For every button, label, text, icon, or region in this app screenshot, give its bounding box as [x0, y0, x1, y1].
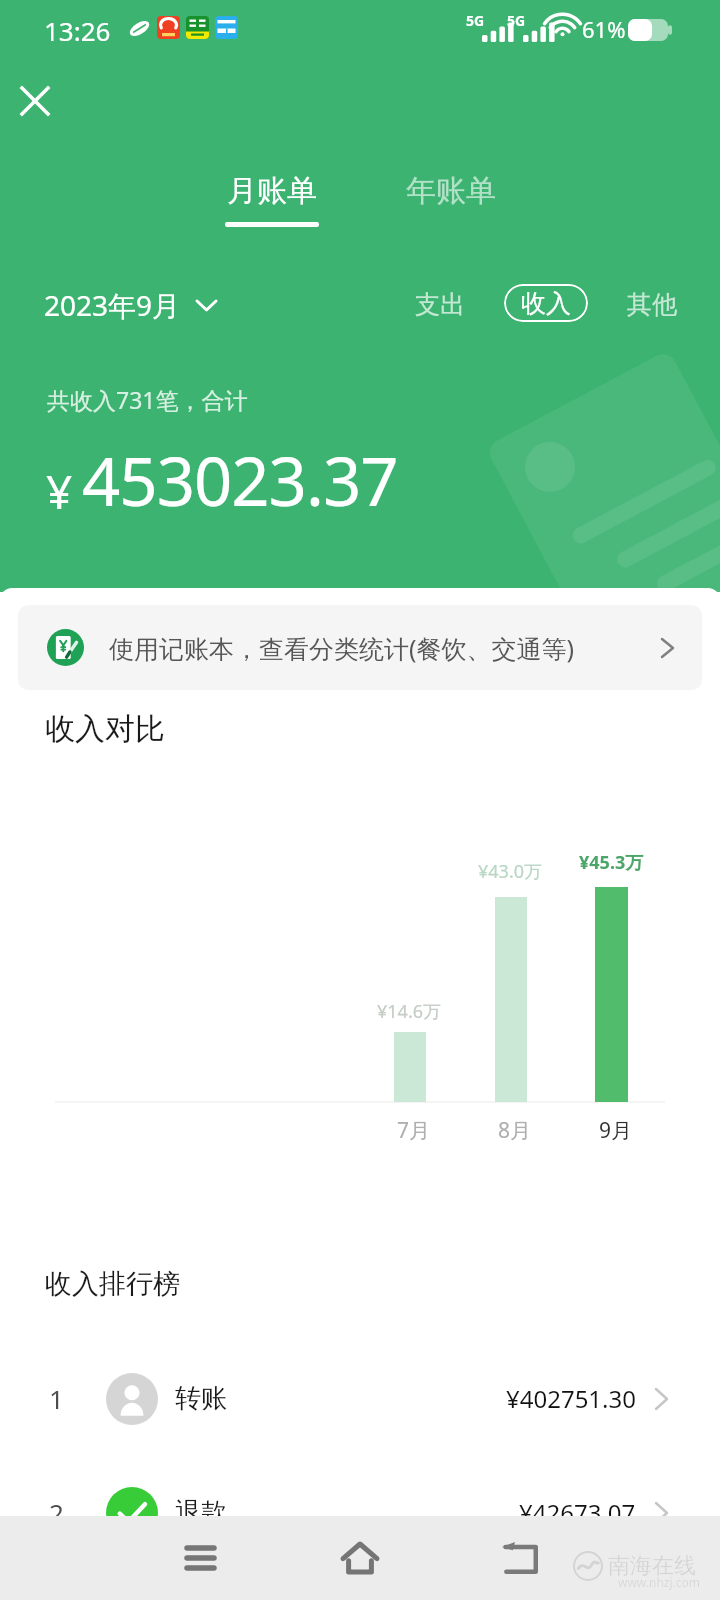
- staticText: 收入: [521, 288, 571, 319]
- button[interactable]: Back: [480, 1516, 560, 1600]
- button[interactable]: 1: [0, 1346, 720, 1451]
- staticText: ¥42673.07: [519, 1496, 636, 1529]
- staticText: 年账单: [406, 172, 496, 210]
- staticText: 13:26: [44, 13, 111, 48]
- button[interactable]: 2023年9月: [44, 286, 217, 324]
- button[interactable]: Recent apps: [160, 1516, 240, 1600]
- staticText: 支出: [415, 289, 465, 320]
- staticText: 5G: [466, 11, 485, 30]
- button[interactable]: 其他: [611, 285, 693, 323]
- staticText: 南海在线: [608, 1552, 696, 1580]
- staticText: 7月: [397, 1116, 431, 1145]
- button[interactable]: 支出: [399, 285, 481, 323]
- staticText: 5G: [507, 11, 526, 30]
- staticText: 共收入731笔，合计: [47, 384, 248, 415]
- button[interactable]: Home: [320, 1516, 400, 1600]
- staticText: 收入排行榜: [45, 1267, 180, 1301]
- button[interactable]: 使用记账本，查看分类统计(餐饮、交通等): [18, 605, 702, 690]
- staticText: ¥45.3万: [579, 850, 644, 875]
- staticText: 1: [49, 1381, 64, 1416]
- staticText: ¥43.0万: [478, 859, 543, 884]
- staticText: 2023年9月: [44, 286, 181, 324]
- button[interactable]: 月账单: [205, 164, 339, 235]
- button[interactable]: 2: [0, 1460, 720, 1565]
- staticText: 使用记账本，查看分类统计(餐饮、交通等): [109, 631, 575, 665]
- button[interactable]: 年账单: [386, 164, 516, 218]
- staticText: 退款: [175, 1496, 227, 1529]
- staticText: 其他: [627, 289, 677, 320]
- staticText: 转账: [175, 1382, 227, 1415]
- staticText: 收入对比: [45, 710, 165, 748]
- staticText: 453023.37: [82, 434, 398, 525]
- staticText: 8月: [498, 1116, 532, 1145]
- staticText: ¥402751.30: [506, 1382, 636, 1415]
- button[interactable]: Close: [11, 77, 59, 125]
- staticText: 61%: [582, 14, 626, 44]
- staticText: www.nhzj.com: [618, 1574, 701, 1590]
- staticText: 2: [49, 1495, 64, 1530]
- staticText: ¥14.6万: [377, 999, 442, 1024]
- staticText: 9月: [599, 1116, 633, 1145]
- staticText: ¥: [46, 460, 73, 523]
- staticText: 月账单: [227, 172, 317, 210]
- button[interactable]: 收入: [504, 284, 588, 322]
